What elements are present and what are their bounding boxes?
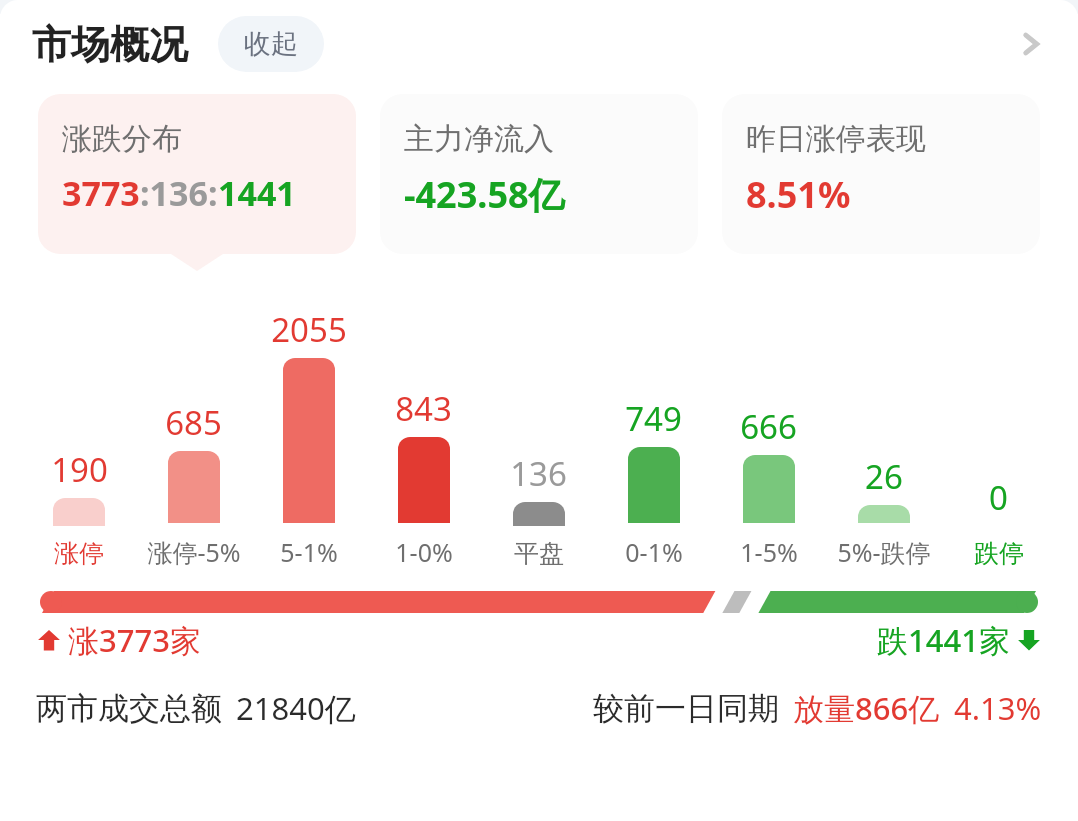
staticText: 190 (51, 447, 108, 492)
staticText: 涨停 (54, 538, 104, 569)
staticText: 收起 (244, 27, 298, 61)
staticText: 0-1% (625, 535, 683, 569)
button[interactable]: More (1008, 21, 1054, 67)
staticText: 平盘 (514, 538, 564, 569)
staticText: 26 (865, 454, 903, 499)
staticText: 5-1% (280, 535, 338, 569)
staticText: 跌停 (974, 538, 1024, 569)
staticText: 21840亿 (236, 687, 356, 729)
staticText: 放量866亿 (793, 687, 940, 729)
staticText: :136: (140, 170, 218, 216)
button[interactable]: 涨跌分布 (38, 94, 356, 254)
staticText: 1-5% (740, 535, 798, 569)
staticText: 两市成交总额 (36, 689, 222, 728)
staticText: 主力净流入 (404, 120, 554, 158)
button[interactable]: 昨日涨停表现 (722, 94, 1040, 254)
staticText: 0 (989, 475, 1008, 520)
button[interactable]: 主力净流入 (380, 94, 698, 254)
staticText: 昨日涨停表现 (746, 120, 926, 158)
staticText: 685 (165, 400, 222, 445)
staticText: 市场概况 (32, 20, 188, 69)
staticText: 5%-跌停 (837, 535, 931, 569)
staticText: 1441 (218, 170, 296, 216)
staticText: 3773 (62, 170, 140, 216)
staticText: 涨3773家 (68, 619, 201, 661)
staticText: 1-0% (395, 535, 453, 569)
staticText: -423.58亿 (404, 170, 565, 219)
staticText: 4.13% (954, 687, 1042, 729)
staticText: 8.51% (746, 170, 851, 219)
staticText: 666 (740, 404, 797, 449)
staticText: 843 (395, 386, 452, 431)
button[interactable]: 收起 (218, 16, 324, 72)
staticText: 涨停-5% (147, 535, 241, 569)
staticText: 涨跌分布 (62, 120, 182, 158)
staticText: 2055 (271, 307, 347, 352)
staticText: 136 (510, 451, 567, 496)
staticText: 较前一日同期 (593, 689, 779, 728)
staticText: 跌1441家 (877, 619, 1010, 661)
staticText: 749 (625, 396, 682, 441)
